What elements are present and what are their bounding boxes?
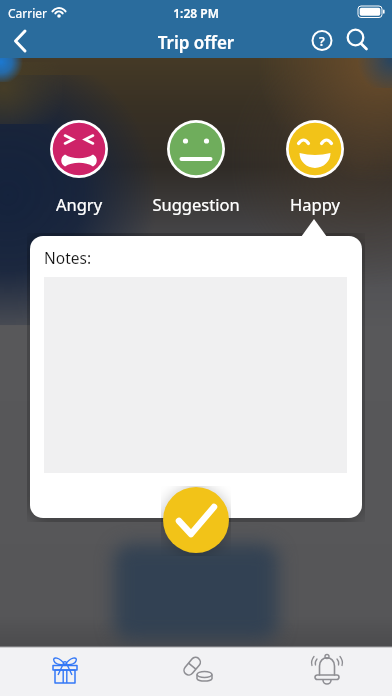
staticText: 1:28 PM: [0, 5, 392, 21]
staticText: Trip offer: [116, 31, 276, 696]
staticText: Notes:: [44, 247, 92, 268]
staticText: Suggestion: [116, 193, 276, 696]
staticText: Carrier: [8, 5, 48, 21]
staticText: ?: [242, 33, 392, 696]
staticText: Angry: [0, 193, 159, 696]
staticText: Happy: [235, 193, 392, 696]
